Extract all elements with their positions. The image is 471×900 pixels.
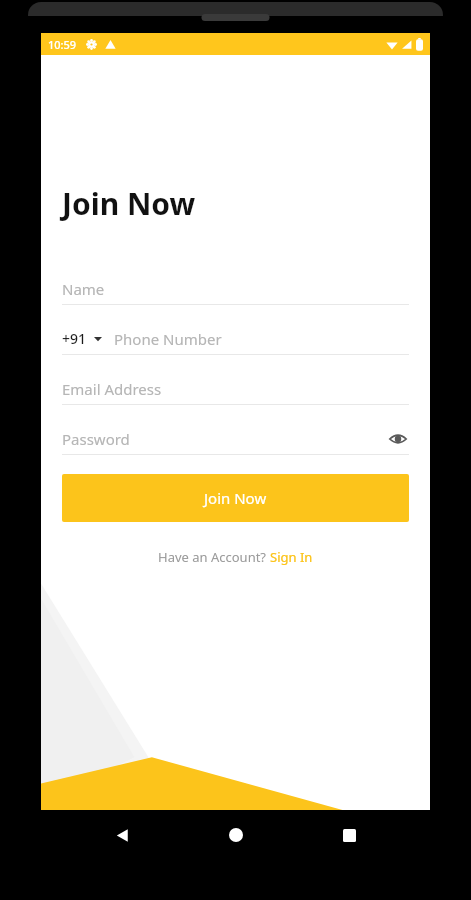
button[interactable]: Sign In <box>270 548 313 566</box>
staticText: +91 <box>62 329 87 348</box>
button[interactable]: Show password <box>387 428 409 450</box>
button[interactable]: +91 <box>62 323 409 355</box>
staticText: Join Now <box>204 488 267 508</box>
button[interactable]: Home <box>219 818 253 852</box>
staticText: Join Now <box>62 183 196 224</box>
staticText: Have an Account? <box>158 548 270 566</box>
staticText: Sign In <box>270 548 313 566</box>
staticText: Email Address <box>62 379 162 399</box>
button[interactable]: Join Now <box>62 474 409 522</box>
button[interactable]: Back <box>105 818 139 852</box>
staticText: Phone Number <box>114 329 222 349</box>
staticText: 10:59 <box>48 37 77 52</box>
button[interactable]: Name <box>62 273 409 305</box>
button[interactable]: Password <box>62 423 409 455</box>
button[interactable]: Email Address <box>62 373 409 405</box>
staticText: Password <box>62 429 130 449</box>
staticText: Name <box>62 279 105 299</box>
button[interactable]: Recent apps <box>332 818 366 852</box>
